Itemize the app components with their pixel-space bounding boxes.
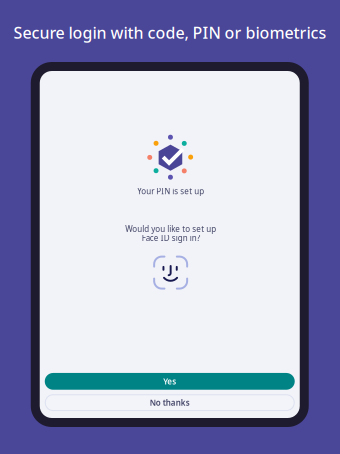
staticText: Face ID sign in?: [142, 233, 200, 243]
staticText: Your PIN is set up: [137, 186, 204, 196]
staticText: No thanks: [150, 397, 190, 408]
staticText: Secure login with code, PIN or biometric…: [13, 22, 326, 43]
button[interactable]: Yes: [45, 373, 295, 390]
staticText: Yes: [163, 376, 176, 387]
staticText: Would you like to set up: [125, 224, 216, 234]
button[interactable]: No thanks: [45, 394, 295, 411]
